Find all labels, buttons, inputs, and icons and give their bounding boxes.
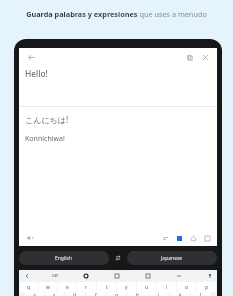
button[interactable]: u <box>137 282 156 292</box>
button[interactable]: Transcribe <box>159 232 171 244</box>
button[interactable]: More <box>174 271 183 280</box>
staticText: Hello! <box>25 68 48 80</box>
button[interactable]: r <box>77 282 96 292</box>
staticText: i <box>166 284 168 291</box>
button[interactable]: e <box>58 282 76 292</box>
button[interactable]: a <box>25 292 44 296</box>
button[interactable]: Voice input <box>205 271 214 280</box>
button[interactable]: s <box>45 292 64 296</box>
button[interactable]: Swap languages <box>109 251 127 265</box>
staticText: Konnichiwa! <box>25 134 65 144</box>
staticText: q <box>27 284 31 291</box>
staticText: r <box>85 284 88 291</box>
staticText: d <box>73 292 77 296</box>
staticText: t <box>106 284 108 291</box>
button[interactable]: k <box>170 292 190 296</box>
button[interactable]: English <box>19 251 109 265</box>
staticText: Guarda palabras y expresiones que uses a… <box>26 9 207 19</box>
staticText: k <box>179 292 182 296</box>
button[interactable]: Copy <box>183 51 196 64</box>
button[interactable]: o <box>177 282 196 292</box>
button[interactable]: Translate <box>112 271 121 280</box>
staticText: s <box>53 292 56 296</box>
button[interactable]: Japanese <box>127 251 217 265</box>
staticText: l <box>200 292 202 296</box>
staticText: English <box>55 255 73 262</box>
button[interactable]: t <box>97 282 116 292</box>
button[interactable]: p <box>197 282 216 292</box>
button[interactable]: Saved <box>173 232 185 244</box>
staticText: f <box>95 292 97 296</box>
staticText: g <box>115 292 119 296</box>
staticText: j <box>158 292 160 296</box>
button[interactable]: w <box>39 282 57 292</box>
button[interactable]: d <box>65 292 85 296</box>
button[interactable]: g <box>107 292 127 296</box>
button[interactable]: j <box>149 292 169 296</box>
staticText: e <box>66 284 69 291</box>
button[interactable]: Back <box>24 50 38 64</box>
button[interactable]: Expand <box>22 271 31 280</box>
button[interactable]: Fullscreen <box>201 232 213 244</box>
button[interactable]: Listen <box>23 231 36 244</box>
staticText: a <box>33 292 36 296</box>
button[interactable]: i <box>157 282 176 292</box>
staticText: u <box>145 284 149 291</box>
button[interactable]: l <box>191 292 211 296</box>
button[interactable]: GIF <box>52 273 59 278</box>
staticText: y <box>125 284 128 291</box>
button[interactable]: h <box>128 292 148 296</box>
staticText: w <box>46 284 50 291</box>
button[interactable]: y <box>117 282 136 292</box>
staticText: p <box>205 284 209 291</box>
button[interactable]: Emoji <box>81 271 90 280</box>
staticText: こんにちは! <box>25 114 69 125</box>
button[interactable]: Clipboard <box>143 271 152 280</box>
staticText: h <box>136 292 140 296</box>
staticText: o <box>185 284 189 291</box>
staticText: Japanese <box>161 255 183 262</box>
button[interactable]: f <box>86 292 106 296</box>
button[interactable]: Home <box>187 232 199 244</box>
button[interactable]: Close <box>199 51 212 64</box>
button[interactable]: q <box>20 282 38 292</box>
